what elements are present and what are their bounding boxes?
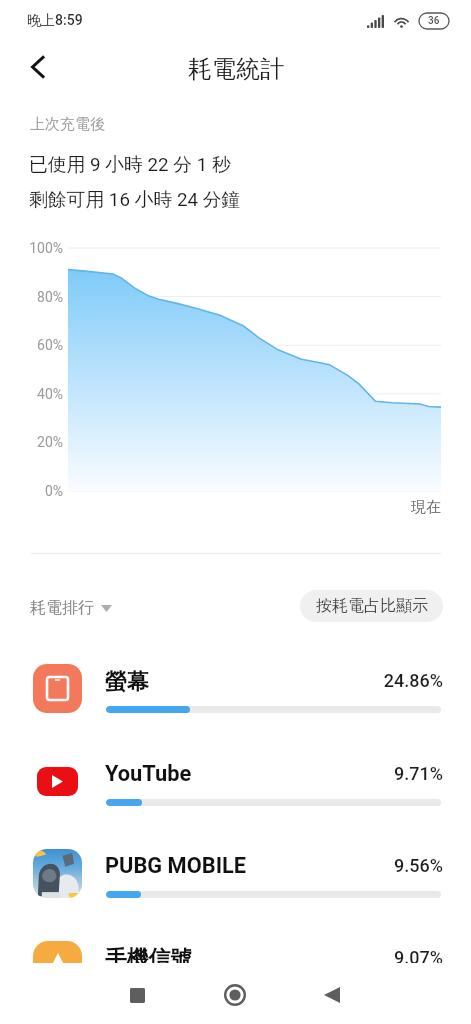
staticText: 60% [13,337,63,353]
staticText: 40% [13,386,63,402]
button[interactable]: 按耗電占比顯示 [300,590,443,622]
staticText: 晚上8:59 [27,12,83,30]
staticText: 20% [13,434,63,450]
staticText: 9.71% [300,763,443,784]
staticText: 已使用 9 小時 22 分 1 秒 [29,153,231,177]
staticText: 手機信號 [105,945,193,972]
staticText: 100% [13,240,63,256]
button[interactable]: Back [16,45,60,89]
staticText: 24.86% [300,670,443,691]
button[interactable]: Back [308,971,356,1019]
staticText: 按耗電占比顯示 [316,596,428,616]
staticText: 剩餘可用 16 小時 24 分鐘 [29,188,241,212]
button[interactable]: 螢幕 [0,645,471,737]
staticText: 現在 [411,498,441,517]
staticText: 9.56% [300,855,443,876]
button[interactable]: 手機信號 [0,922,471,1014]
staticText: PUBG MOBILE [105,853,247,879]
button[interactable]: YouTube [0,738,471,830]
staticText: YouTube [105,761,192,787]
button[interactable]: Recent apps [113,971,161,1019]
staticText: 80% [13,289,63,305]
staticText: 0% [13,483,63,499]
staticText: 耗電排行 [30,598,94,618]
button[interactable]: PUBG MOBILE [0,830,471,922]
staticText: 36 [428,15,440,27]
staticText: 上次充電後 [30,115,105,134]
staticText: 耗電統計 [188,54,284,84]
button[interactable]: Home [211,971,259,1019]
staticText: 9.07% [300,947,443,968]
staticText: 螢幕 [105,668,149,695]
button[interactable]: 耗電排行 [20,591,122,625]
